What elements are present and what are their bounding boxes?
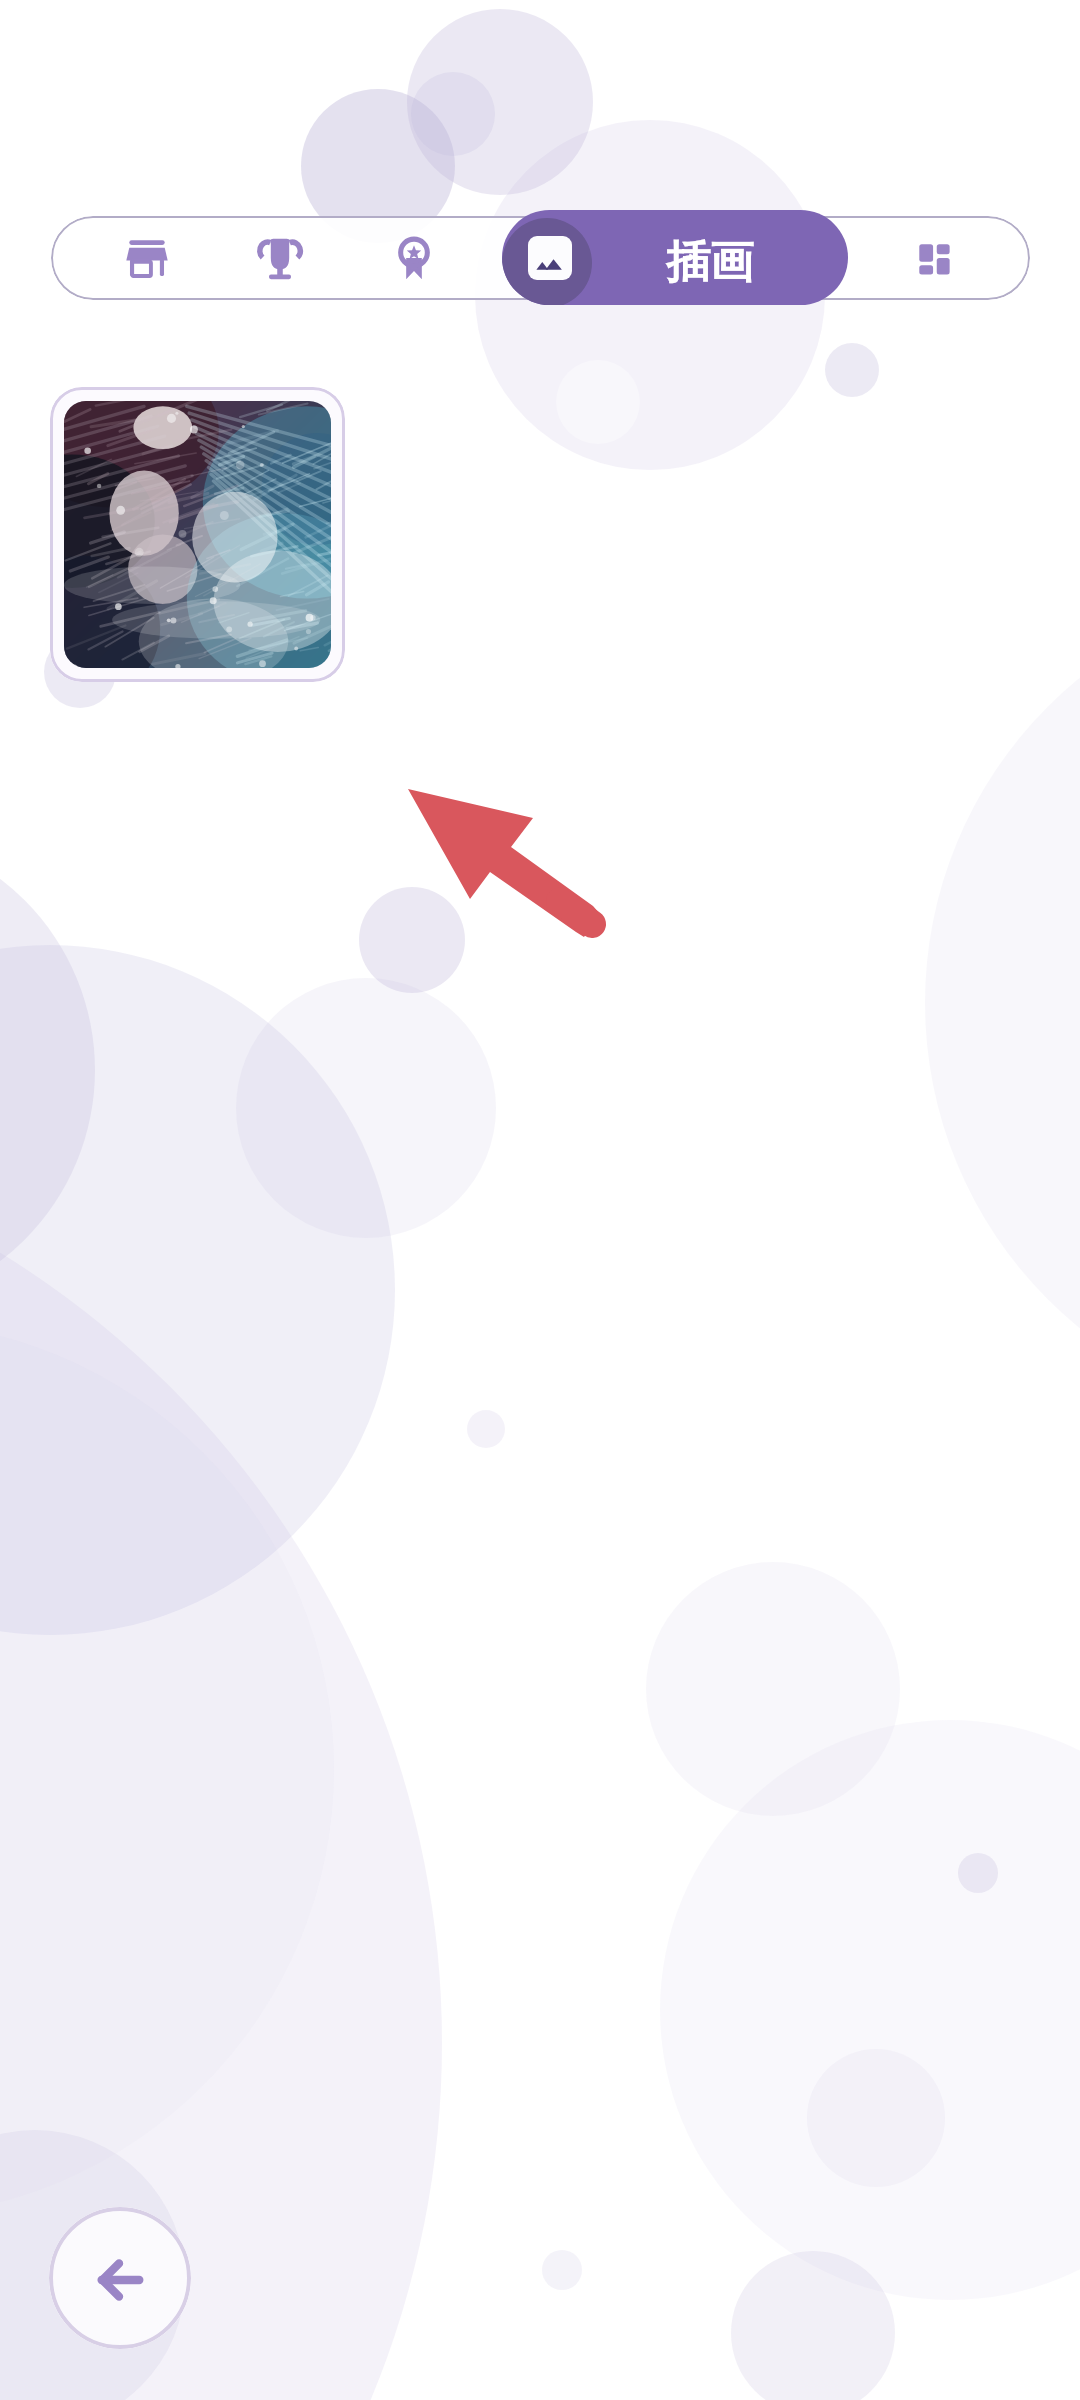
button[interactable]: Dashboard: [890, 216, 978, 300]
button[interactable]: Awards: [370, 216, 458, 300]
button[interactable]: 插画: [502, 210, 848, 305]
staticText: 插画: [666, 235, 754, 290]
button[interactable]: Back: [49, 2207, 191, 2349]
button[interactable]: Shop: [103, 216, 191, 300]
button[interactable]: Ranking: [236, 216, 324, 300]
button[interactable]: [50, 387, 345, 682]
